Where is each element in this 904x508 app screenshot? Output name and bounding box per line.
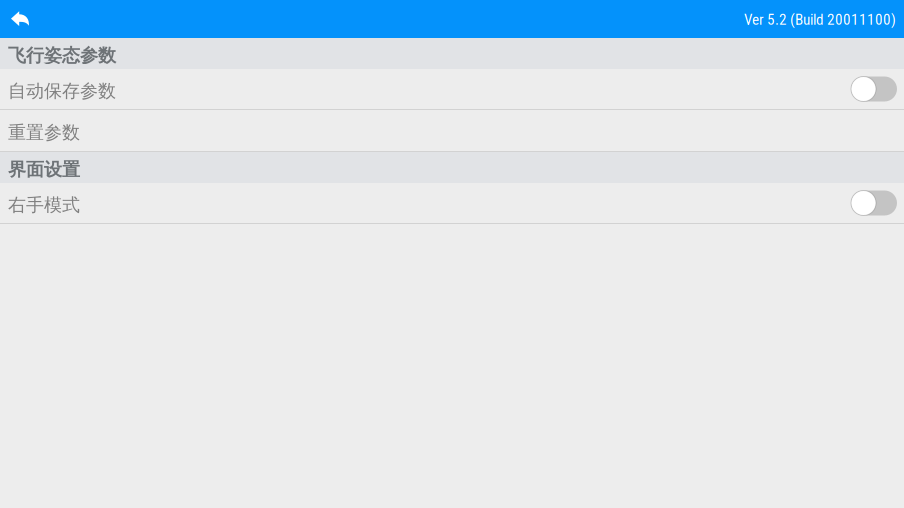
button[interactable]: 重置参数 — [0, 110, 904, 152]
staticText: 自动保存参数 — [8, 80, 116, 102]
button[interactable]: 自动保存参数 — [0, 69, 904, 110]
staticText: 飞行姿态参数 — [8, 44, 116, 67]
button[interactable]: 右手模式 — [0, 183, 904, 224]
button[interactable]: Back — [0, 0, 39, 38]
staticText: Ver 5.2 (Build 20011100) — [744, 11, 896, 28]
staticText: 右手模式 — [8, 194, 80, 216]
staticText: 界面设置 — [8, 158, 80, 181]
staticText: 重置参数 — [8, 121, 80, 144]
